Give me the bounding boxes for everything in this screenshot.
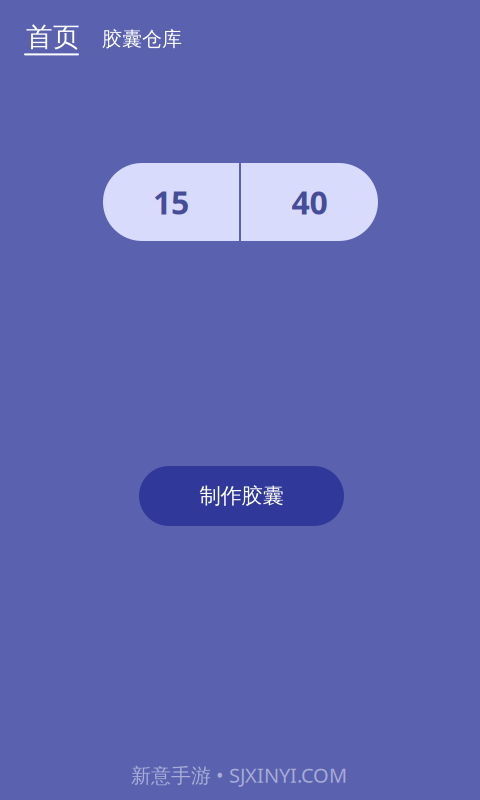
button[interactable]: 制作胶囊 — [139, 466, 344, 526]
button[interactable]: 胶囊仓库 — [96, 19, 188, 59]
staticText: 首页 — [26, 21, 80, 53]
button[interactable]: 首页 — [22, 21, 82, 55]
staticText: 新意手游 • SJXINYI.COM — [131, 762, 347, 788]
staticText: 15 — [153, 181, 189, 223]
staticText: 胶囊仓库 — [102, 27, 182, 51]
button[interactable]: 右半胶囊 40 — [241, 163, 378, 241]
staticText: 制作胶囊 — [199, 483, 283, 509]
staticText: 40 — [291, 181, 327, 223]
button[interactable]: 左半胶囊 15 — [103, 163, 239, 241]
